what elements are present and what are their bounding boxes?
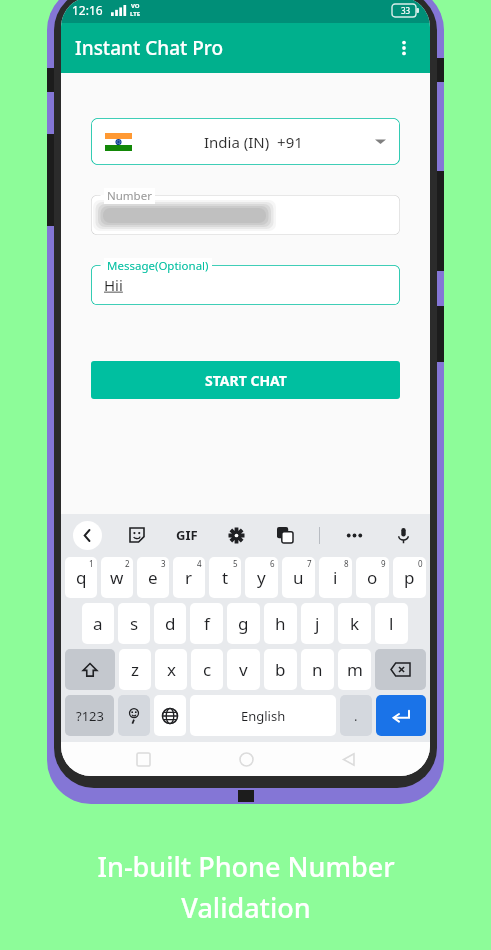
staticText: b xyxy=(275,658,286,681)
button[interactable]: Back xyxy=(328,742,368,776)
staticText: f xyxy=(204,612,210,635)
button[interactable]: Emoji xyxy=(118,695,150,736)
staticText: 4 xyxy=(197,558,202,569)
staticText: 6 xyxy=(270,558,275,569)
staticText: v xyxy=(239,658,248,681)
staticText: . xyxy=(354,707,358,725)
button[interactable]: f xyxy=(190,603,223,644)
staticText: w xyxy=(110,566,124,589)
staticText: g xyxy=(238,612,249,635)
button[interactable]: a xyxy=(82,603,114,644)
staticText: Hii xyxy=(104,275,123,295)
staticText: m xyxy=(347,658,363,681)
staticText: 0 xyxy=(418,558,423,569)
staticText: k xyxy=(350,612,360,635)
staticText: l xyxy=(389,612,394,635)
button[interactable]: j xyxy=(301,603,334,644)
button[interactable]: z xyxy=(119,649,151,690)
button[interactable]: India (IN) +91 xyxy=(91,118,400,165)
button[interactable]: g xyxy=(227,603,260,644)
staticText: 7 xyxy=(307,558,312,569)
button[interactable]: y xyxy=(245,557,278,598)
button[interactable]: Voice input xyxy=(388,520,418,550)
button[interactable]: Back xyxy=(73,521,102,550)
staticText: i xyxy=(333,566,338,589)
button[interactable]: Shift xyxy=(65,649,115,690)
button[interactable]: x xyxy=(155,649,187,690)
staticText: Instant Chat Pro xyxy=(75,35,224,61)
button[interactable]: GIF xyxy=(172,522,202,548)
staticText: u xyxy=(293,566,304,589)
staticText: y xyxy=(257,566,266,589)
button[interactable]: Backspace xyxy=(375,649,426,690)
button[interactable]: Settings xyxy=(221,520,251,550)
staticText: a xyxy=(93,612,103,635)
button[interactable]: q xyxy=(65,557,97,598)
staticText: o xyxy=(367,566,378,589)
button[interactable]: d xyxy=(154,603,186,644)
button[interactable]: t xyxy=(209,557,241,598)
staticText: 3 xyxy=(161,558,166,569)
button[interactable]: Sticker xyxy=(122,520,152,550)
button[interactable]: Recents xyxy=(123,742,163,776)
button[interactable]: e xyxy=(137,557,169,598)
button[interactable]: English xyxy=(190,695,336,736)
button[interactable]: b xyxy=(264,649,297,690)
staticText: English xyxy=(241,707,286,725)
button[interactable]: o xyxy=(356,557,389,598)
staticText: India (IN) +91 xyxy=(204,132,303,152)
button[interactable]: . xyxy=(340,695,372,736)
button[interactable]: c xyxy=(191,649,223,690)
staticText: 8 xyxy=(344,558,349,569)
button[interactable]: p xyxy=(393,557,426,598)
staticText: GIF xyxy=(176,526,198,544)
staticText: p xyxy=(404,566,415,589)
button[interactable]: s xyxy=(118,603,150,644)
button[interactable]: Translate xyxy=(270,520,300,550)
button[interactable]: v xyxy=(227,649,260,690)
button[interactable]: Language xyxy=(154,695,186,736)
staticText: 9 xyxy=(381,558,386,569)
button[interactable]: l xyxy=(375,603,408,644)
button[interactable]: u xyxy=(282,557,315,598)
staticText: ?123 xyxy=(76,707,104,725)
staticText: z xyxy=(131,658,139,681)
staticText: 12:16 xyxy=(72,2,103,18)
button[interactable]: START CHAT xyxy=(91,361,400,399)
button[interactable]: More options xyxy=(384,28,424,68)
staticText: 2 xyxy=(125,558,130,569)
staticText: Message(Optional) xyxy=(107,258,209,274)
button[interactable]: More xyxy=(339,520,369,550)
staticText: 1 xyxy=(89,558,94,569)
button[interactable]: Home xyxy=(226,742,266,776)
staticText: 33 xyxy=(401,5,411,16)
button[interactable]: Hii xyxy=(91,265,400,305)
staticText: LTE xyxy=(130,10,141,18)
staticText: In-built Phone Number xyxy=(97,848,395,885)
button[interactable]: i xyxy=(319,557,352,598)
button[interactable]: k xyxy=(338,603,371,644)
staticText: Number xyxy=(107,188,152,204)
staticText: j xyxy=(315,612,320,635)
staticText: q xyxy=(76,566,87,589)
button[interactable]: Enter xyxy=(376,695,426,736)
staticText: r xyxy=(185,566,193,589)
staticText: 5 xyxy=(233,558,238,569)
staticText: t xyxy=(222,566,229,589)
staticText: c xyxy=(203,658,212,681)
staticText: h xyxy=(275,612,286,635)
button[interactable] xyxy=(91,195,400,235)
button[interactable]: w xyxy=(101,557,133,598)
button[interactable]: m xyxy=(338,649,371,690)
button[interactable]: ?123 xyxy=(65,695,114,736)
staticText: START CHAT xyxy=(205,371,287,390)
staticText: d xyxy=(165,612,176,635)
staticText: s xyxy=(130,612,139,635)
staticText: VO xyxy=(131,2,140,10)
button[interactable]: h xyxy=(264,603,297,644)
button[interactable]: n xyxy=(301,649,334,690)
staticText: Validation xyxy=(181,889,311,926)
staticText: x xyxy=(167,658,176,681)
button[interactable]: r xyxy=(173,557,205,598)
staticText: n xyxy=(312,658,323,681)
